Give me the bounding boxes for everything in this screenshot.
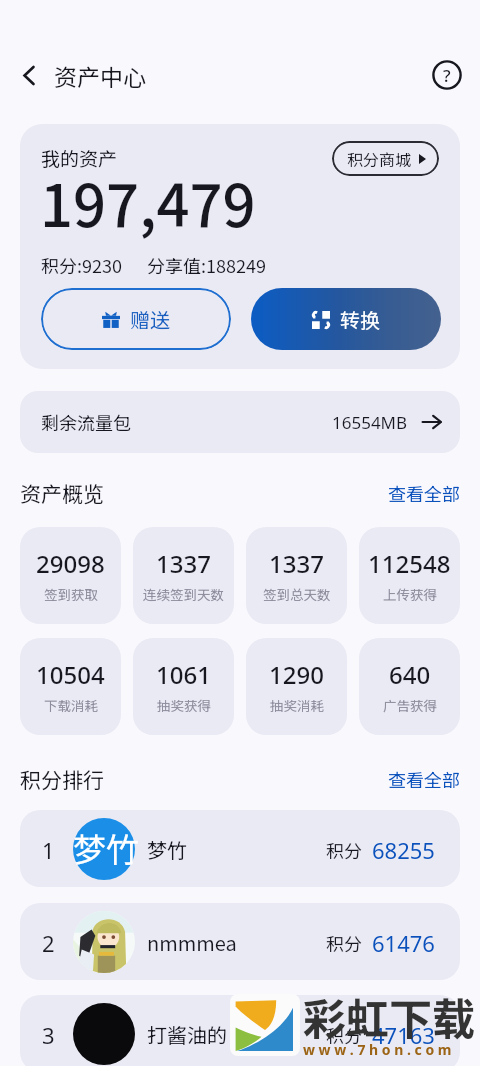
button[interactable]: 查看全部	[388, 766, 460, 792]
button[interactable]: 1337	[133, 527, 234, 624]
button[interactable]: 赠送	[41, 288, 231, 350]
staticText: 47163	[372, 1020, 435, 1050]
staticText: 112548	[368, 547, 451, 580]
other: More	[422, 412, 442, 432]
button[interactable]: Help	[427, 55, 467, 95]
staticText: 签到获取	[44, 584, 98, 604]
staticText: 197,479	[40, 160, 256, 244]
button[interactable]: 1337	[246, 527, 347, 624]
button[interactable]: 2	[20, 903, 460, 980]
staticText: 1290	[269, 658, 324, 691]
staticText: 16554MB	[332, 411, 408, 434]
staticText: 抽奖获得	[157, 695, 211, 715]
button[interactable]: Back	[8, 54, 50, 96]
button[interactable]: 1	[20, 810, 460, 887]
staticText: 上传获得	[383, 584, 437, 604]
staticText: 广告获得	[383, 695, 437, 715]
button[interactable]: 1061	[133, 638, 234, 735]
staticText: ?	[443, 64, 451, 87]
button[interactable]: 640	[359, 638, 460, 735]
staticText: 29098	[36, 547, 105, 580]
staticText: 积分商城	[347, 147, 412, 170]
staticText: 3	[42, 1020, 55, 1050]
button[interactable]: 查看全部	[388, 480, 460, 506]
staticText: 68255	[372, 835, 435, 865]
staticText: 查看全部	[388, 480, 460, 506]
staticText: 积分:9230	[41, 252, 122, 278]
button[interactable]: 转换	[251, 288, 441, 350]
staticText: nmmmea	[147, 928, 237, 957]
button[interactable]: 3	[20, 995, 460, 1066]
staticText: 积分排行	[20, 764, 104, 794]
staticText: 剩余流量包	[41, 409, 131, 435]
staticText: 转换	[340, 305, 380, 334]
staticText: 资产中心	[54, 59, 146, 92]
staticText: 1	[42, 835, 55, 865]
button[interactable]: 积分商城	[332, 141, 439, 176]
staticText: w w w . 7 h o n . c o m	[303, 1040, 452, 1059]
staticText: 连续签到天数	[143, 584, 224, 604]
button[interactable]: 29098	[20, 527, 121, 624]
staticText: 640	[389, 658, 431, 691]
staticText: 赠送	[130, 305, 170, 334]
staticText: 1337	[269, 547, 324, 580]
staticText: 资产概览	[20, 478, 104, 508]
staticText: 我的资产	[41, 144, 118, 172]
staticText: 分享值:188249	[147, 252, 266, 278]
staticText: 61476	[372, 928, 435, 958]
staticText: 签到总天数	[263, 584, 331, 604]
staticText: 积分	[326, 930, 362, 956]
staticText: 梦竹	[73, 824, 135, 872]
staticText: 抽奖消耗	[270, 695, 324, 715]
staticText: 积分	[326, 837, 362, 863]
button[interactable]: 剩余流量包	[20, 391, 460, 453]
staticText: 积分	[326, 1022, 362, 1048]
button[interactable]: 1290	[246, 638, 347, 735]
staticText: 1337	[156, 547, 211, 580]
staticText: 2	[42, 928, 55, 958]
staticText: 梦竹	[147, 835, 187, 864]
staticText: 1061	[156, 658, 211, 691]
staticText: 打酱油的	[147, 1020, 227, 1049]
staticText: 彩虹下载	[303, 985, 475, 1047]
staticText: 10504	[36, 658, 105, 691]
staticText: 查看全部	[388, 766, 460, 792]
staticText: 下载消耗	[44, 695, 98, 715]
button[interactable]: 10504	[20, 638, 121, 735]
button[interactable]: 112548	[359, 527, 460, 624]
